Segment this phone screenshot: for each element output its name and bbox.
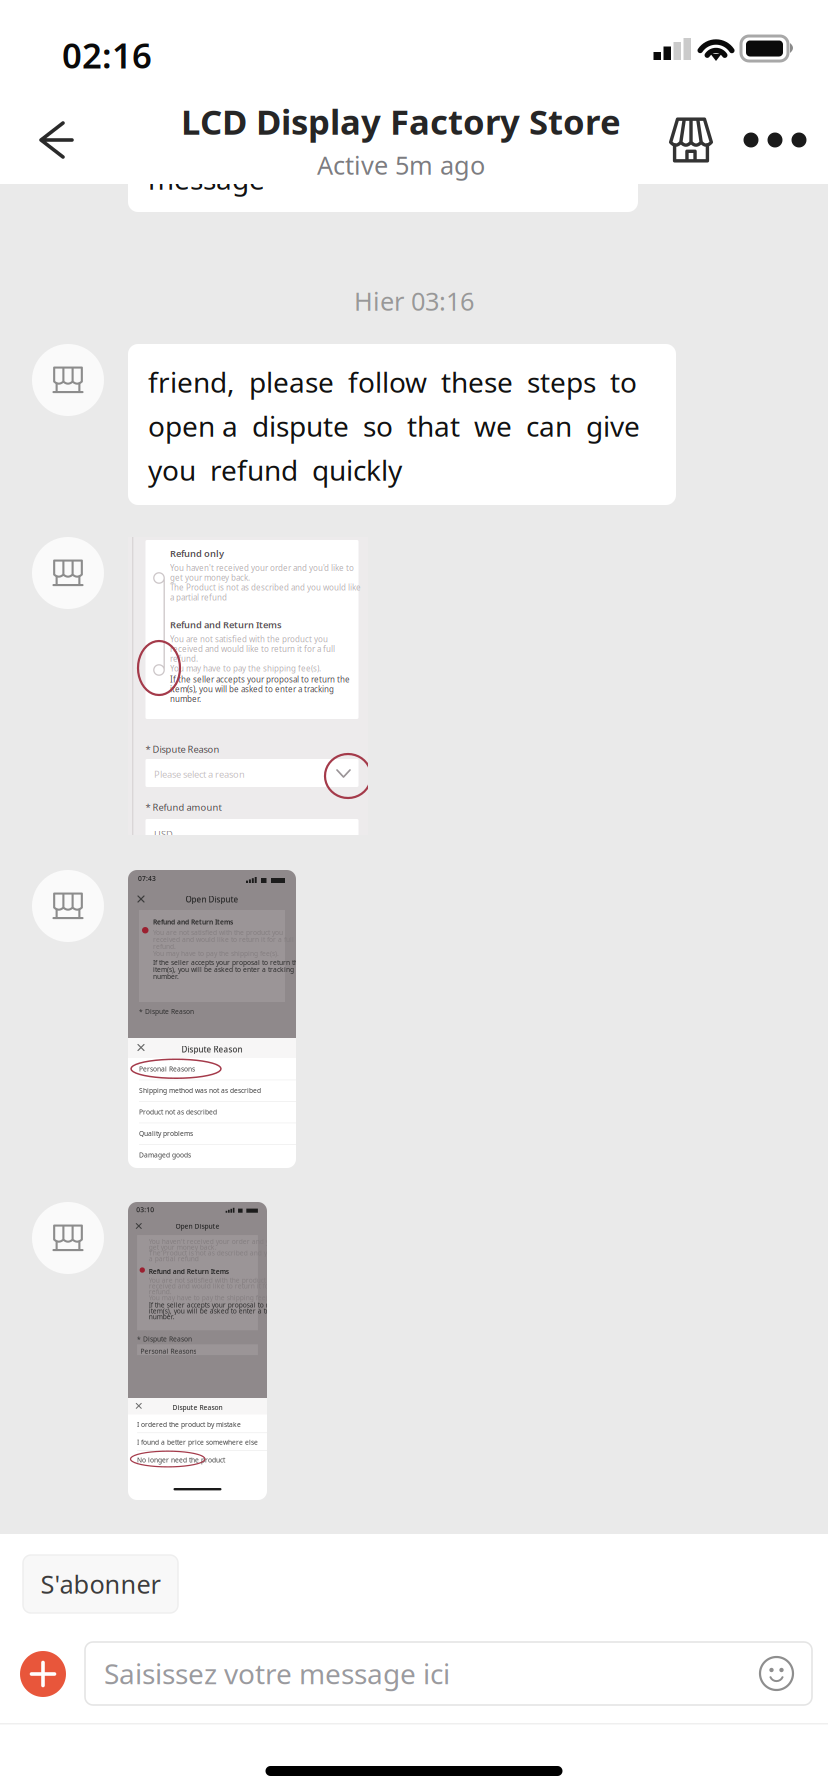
staticText: * Refund amount: [145, 801, 221, 813]
staticText: get your money back.: [170, 572, 250, 583]
staticText: The Product is not as described and you …: [149, 1248, 310, 1257]
staticText: S'abonner: [40, 1567, 160, 1601]
staticText: Quality problems: [139, 1129, 193, 1138]
staticText: You are not satisfied with the product y…: [153, 928, 283, 937]
staticText: refund.: [149, 1287, 172, 1296]
staticText: LCD Display Factory Store: [181, 98, 621, 144]
staticText: Open Dispute: [175, 1222, 219, 1231]
staticText: If the seller accepts your proposal to r…: [149, 1301, 298, 1309]
staticText: * Dispute Reason: [145, 743, 219, 755]
staticText: Damaged goods: [139, 1150, 191, 1159]
staticText: I found a better price somewhere else: [137, 1438, 258, 1447]
staticText: item(s), you will be asked to enter a tr…: [170, 684, 334, 694]
staticText: Saisissez votre message ici: [104, 1655, 450, 1692]
button[interactable]: S'abonner: [23, 1555, 178, 1613]
staticText: * Dispute Reason: [139, 1007, 194, 1016]
staticText: open a dispute so that we can give: [148, 407, 640, 445]
staticText: number.: [170, 694, 201, 704]
staticText: Refund and Return Items: [149, 1267, 229, 1276]
staticText: Active 5m ago: [317, 148, 485, 182]
button[interactable]: Back: [0, 96, 112, 184]
staticText: message: [148, 160, 265, 198]
staticText: 03:10: [136, 1205, 154, 1214]
staticText: a partial refund: [149, 1254, 199, 1263]
staticText: Dispute Reason: [172, 1403, 222, 1412]
staticText: number.: [153, 972, 179, 981]
staticText: item(s), you will be asked to enter a tr…: [149, 1306, 290, 1315]
staticText: You haven't received your order and you'…: [170, 563, 354, 573]
staticText: Dispute Reason: [181, 1044, 242, 1055]
staticText: received and would like to return it for…: [149, 1282, 290, 1290]
staticText: friend, please follow these steps to: [148, 363, 637, 401]
button[interactable]: More options: [722, 96, 828, 184]
staticText: You haven't received your order and you'…: [149, 1237, 304, 1246]
staticText: Personal Reasons: [140, 1347, 196, 1356]
staticText: If the seller accepts your proposal to r…: [153, 958, 302, 967]
staticText: refund.: [170, 653, 198, 664]
staticText: Hier 03:16: [354, 284, 474, 318]
staticText: 02:16: [62, 32, 152, 78]
staticText: You may have to pay the shipping fee(s).: [170, 663, 321, 674]
staticText: USD: [154, 828, 173, 840]
staticText: received and would like to return it for…: [170, 644, 335, 654]
staticText: Product not as described: [139, 1107, 217, 1116]
staticText: received and would like to return it for…: [153, 935, 294, 944]
staticText: I ordered the product by mistake: [137, 1420, 241, 1429]
staticText: refund.: [153, 942, 176, 951]
staticText: you refund quickly: [148, 451, 402, 489]
staticText: Shipping method was not as described: [139, 1086, 261, 1095]
staticText: item(s), you will be asked to enter a tr…: [153, 965, 294, 974]
staticText: Open Dispute: [185, 894, 238, 905]
staticText: If the seller accepts your proposal to r…: [170, 674, 350, 685]
staticText: You are not satisfied with the product y…: [170, 634, 328, 644]
staticText: Personal Reasons: [139, 1064, 195, 1073]
button[interactable]: Saisissez votre message ici: [85, 1642, 812, 1705]
staticText: * Dispute Reason: [137, 1334, 192, 1343]
button[interactable]: Store: [648, 96, 722, 184]
staticText: You may have to pay the shipping fee(s).: [149, 1293, 275, 1302]
staticText: You may have to pay the shipping fee(s).: [153, 949, 279, 958]
staticText: Refund and Return Items: [153, 918, 233, 926]
staticText: 07:43: [138, 874, 156, 883]
button[interactable]: Add attachment: [20, 1651, 66, 1697]
staticText: a partial refund: [170, 592, 227, 603]
staticText: You are not satisfied with the product y…: [149, 1276, 279, 1285]
staticText: No longer need the product: [137, 1455, 225, 1464]
staticText: get your money back.: [149, 1243, 217, 1252]
staticText: Please select a reason: [154, 768, 245, 780]
staticText: The Product is not as described and you …: [170, 582, 361, 593]
staticText: number.: [149, 1312, 175, 1321]
staticText: Refund and Return Items: [170, 618, 282, 631]
staticText: Refund only: [170, 547, 224, 560]
